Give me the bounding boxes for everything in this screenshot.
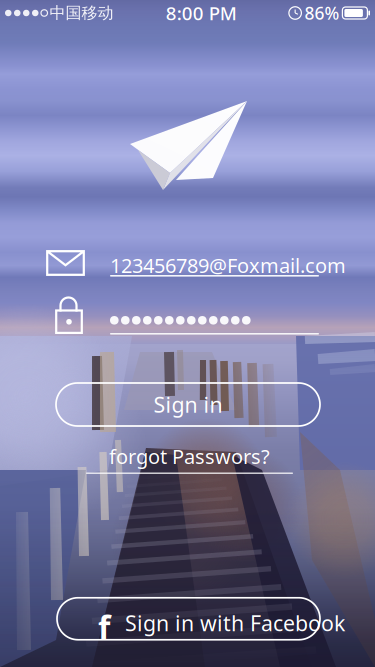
staticText: Sign in [153,390,222,419]
staticText: 中国移动 [49,3,113,23]
button[interactable]: forgot Passwors? [86,443,293,474]
staticText: f [98,606,110,648]
button[interactable]: f [57,598,320,640]
staticText: 86% [304,1,339,24]
staticText: 123456789@Foxmail.com [110,252,346,279]
button[interactable]: Sign in [56,383,320,426]
staticText: 8:00 PM [166,1,237,25]
staticText: Sign in with Facebook [125,609,345,637]
staticText: forgot Passwors? [109,443,270,470]
